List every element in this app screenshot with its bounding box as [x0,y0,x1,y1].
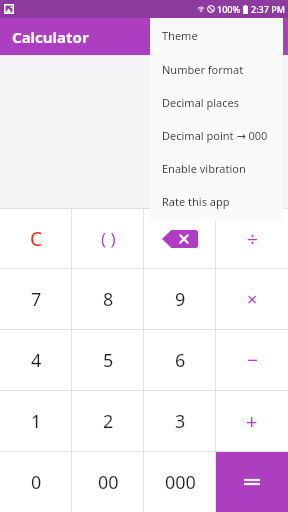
button[interactable]: 000 [144,452,216,512]
button[interactable]: 9 [144,269,216,329]
staticText: 3 [175,409,186,434]
button[interactable]: 7 [0,269,72,329]
button[interactable]: Decimal places [150,86,283,119]
staticText: 8 [103,287,114,312]
staticText: 5 [103,348,114,373]
staticText: 9 [175,287,186,312]
button[interactable]: 6 [144,330,216,390]
button[interactable]: Rate this app [150,185,283,218]
button[interactable] [216,452,288,512]
button[interactable]: Backspace [144,209,216,268]
button[interactable]: 2 [72,391,144,451]
staticText: Number format [162,62,244,77]
staticText: ( ) [101,227,116,250]
button[interactable]: 3 [144,391,216,451]
staticText: 2 [103,409,114,434]
staticText: Calculator [12,27,89,47]
button[interactable]: Theme [150,18,283,53]
staticText: 1 [31,409,42,434]
staticText: − [247,347,258,373]
staticText: 4 [31,348,42,373]
button[interactable]: ÷ [216,209,288,268]
button[interactable]: 0 [0,452,72,512]
button[interactable]: 5 [72,330,144,390]
staticText: 00 [98,470,119,495]
button[interactable]: + [216,391,288,451]
staticText: × [247,287,258,312]
staticText: 7 [31,287,42,312]
button[interactable]: ( ) [72,209,144,268]
button[interactable]: Enable vibration [150,152,283,185]
staticText: 6 [175,348,186,373]
button[interactable]: Number format [150,53,283,86]
button[interactable]: Decimal point → 000 [150,119,283,152]
staticText: 100% [217,3,241,15]
staticText: Enable vibration [162,161,246,176]
button[interactable]: 00 [72,452,144,512]
staticText: ÷ [247,226,258,252]
button[interactable]: 8 [72,269,144,329]
button[interactable]: × [216,269,288,329]
staticText: 000 [165,470,196,495]
button[interactable]: C [0,209,72,268]
staticText: C [30,226,43,252]
button[interactable]: 4 [0,330,72,390]
staticText: Rate this app [162,194,230,209]
staticText: 2:37 PM [251,3,285,15]
button[interactable]: 1 [0,391,72,451]
staticText: 0 [31,470,42,495]
staticText: Decimal places [162,95,240,110]
staticText: + [246,408,258,435]
staticText: Decimal point → 000 [162,128,268,143]
staticText: Theme [162,28,198,43]
button[interactable]: − [216,330,288,390]
